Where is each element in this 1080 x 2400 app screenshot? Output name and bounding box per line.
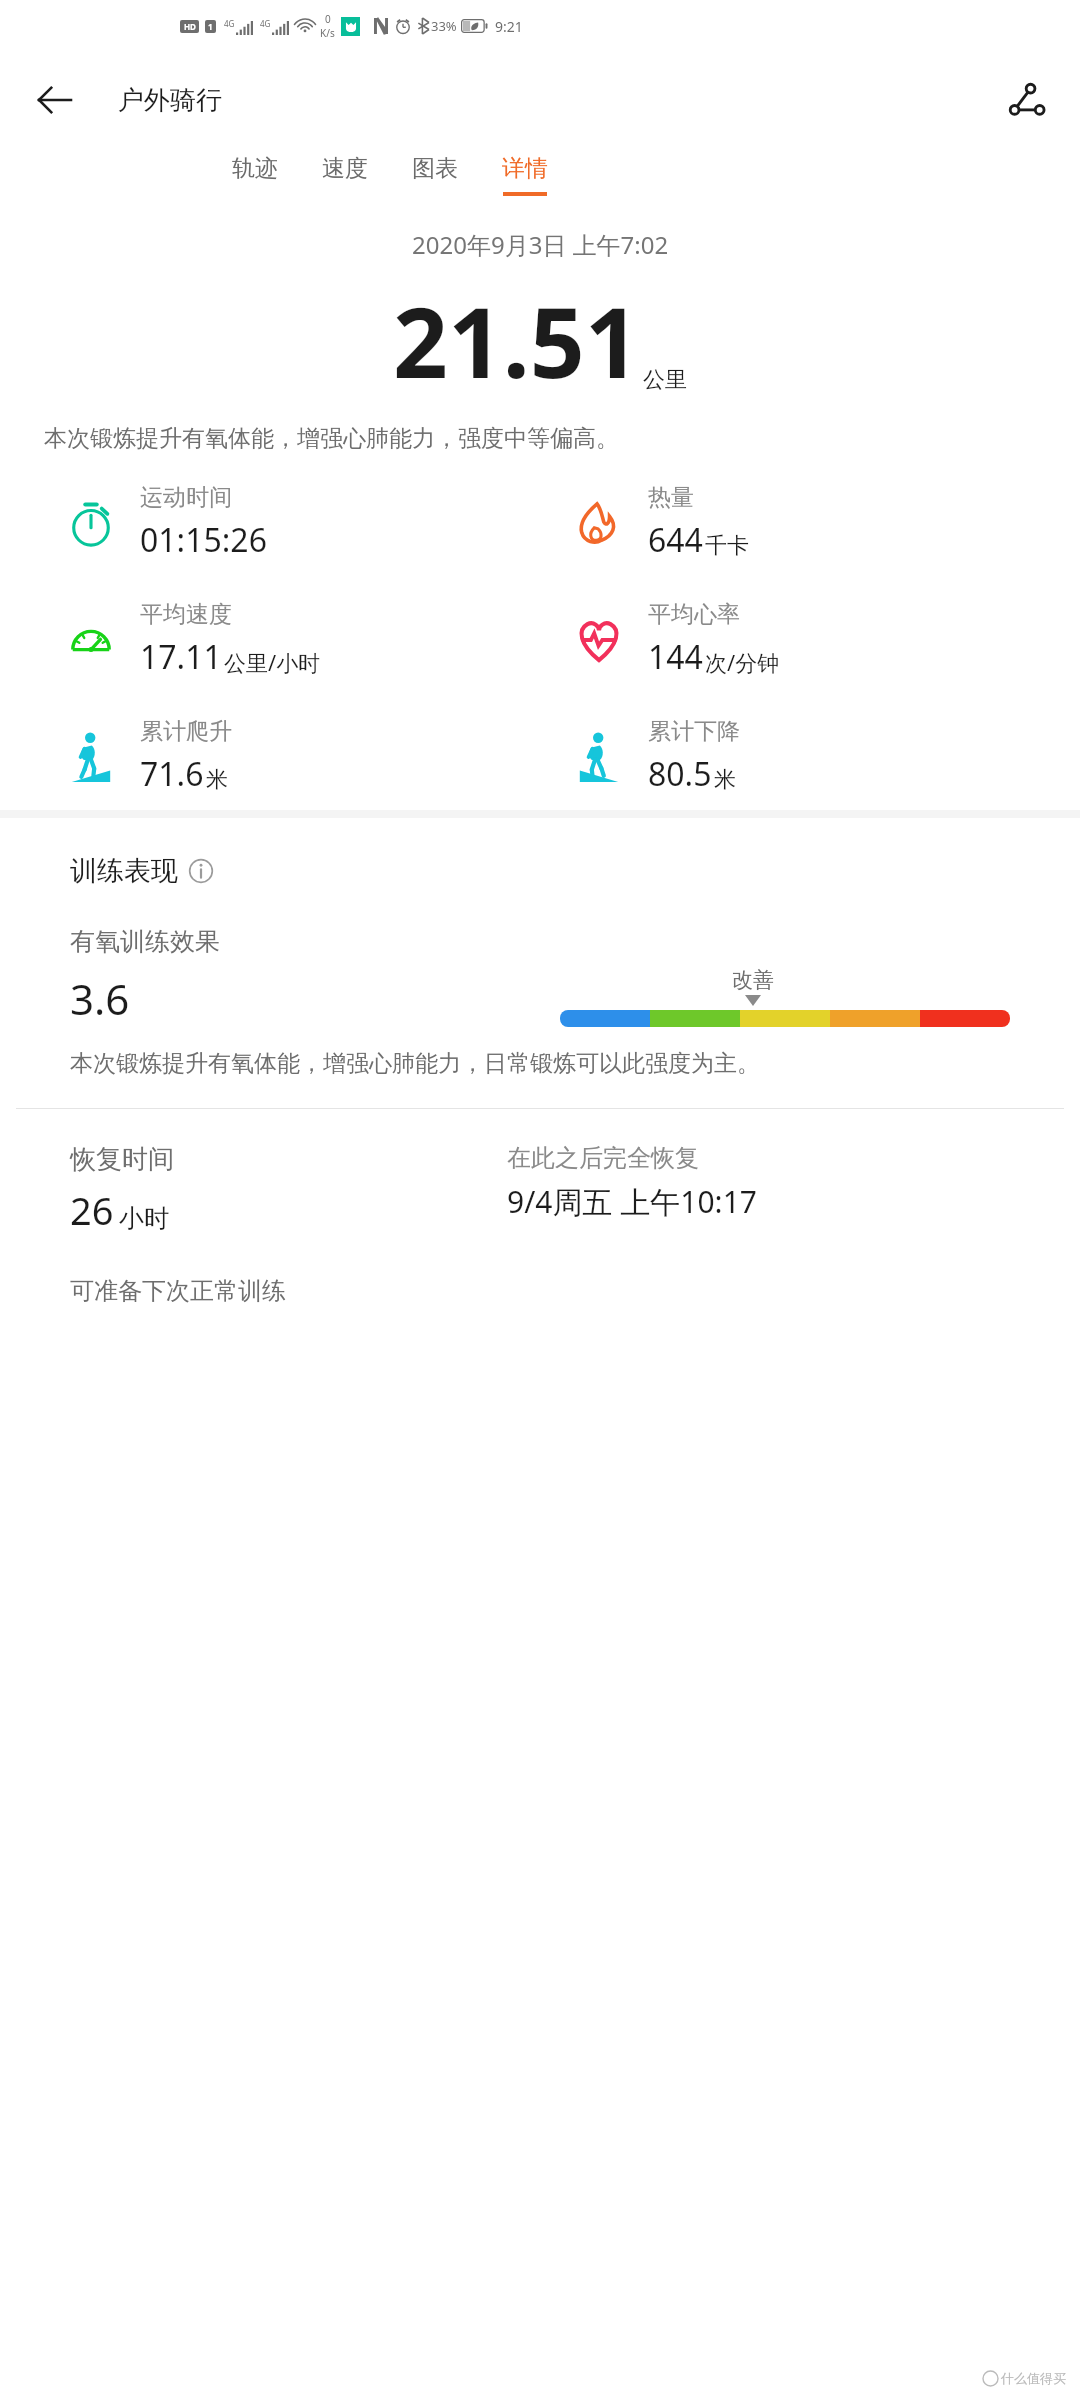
staticText: 644 [648,518,703,562]
staticText: 公里/小时 [224,647,321,677]
staticText: 米 [206,766,228,794]
button[interactable]: 平均心率 [570,600,1080,679]
staticText: 4G [224,18,235,29]
staticText: 可准备下次正常训练 [70,1276,286,1306]
staticText: 本次锻炼提升有氧体能，增强心肺能力，强度中等偏高。 [44,424,1036,453]
staticText: 小时 [119,1203,169,1234]
staticText: 1 [208,21,213,32]
button[interactable]: Back [28,74,80,126]
staticText: 图表 [412,154,458,183]
staticText: HD [184,21,196,32]
staticText: 公里 [643,366,687,394]
staticText: 累计爬升 [140,717,232,746]
staticText: 运动时间 [140,483,232,512]
staticText: 累计下降 [648,717,740,746]
staticText: 21.51 [393,275,640,406]
staticText: 26 [70,1184,114,1236]
staticText: 有氧训练效果 [70,926,220,957]
staticText: 户外骑行 [118,84,222,117]
staticText: 2020年9月3日 上午7:02 [412,228,669,261]
staticText: 平均速度 [140,600,232,629]
staticText: 3.6 [70,970,130,1027]
button[interactable]: 速度 [322,148,368,196]
button[interactable]: 累计下降 [570,717,1080,796]
staticText: 144 [648,635,703,679]
staticText: 什么值得买 [1001,2370,1066,2386]
staticText: 千卡 [705,532,749,560]
staticText: 轨迹 [232,154,278,183]
staticText: 71.6 [140,752,204,796]
staticText: 恢复时间 [70,1143,174,1176]
staticText: 次/分钟 [705,647,780,677]
button[interactable]: 累计爬升 [62,717,540,796]
button[interactable]: Share route [998,72,1054,128]
staticText: 热量 [648,483,694,512]
staticText: 9/4周五 上午10:17 [507,1181,757,1222]
staticText: 4G [260,18,271,29]
staticText: 米 [714,766,736,794]
staticText: 详情 [502,154,548,183]
button[interactable]: 运动时间 [62,483,540,562]
button[interactable]: 详情 [502,148,548,196]
staticText: 在此之后完全恢复 [507,1143,699,1173]
staticText: 80.5 [648,752,712,796]
button[interactable]: 图表 [412,148,458,196]
staticText: 改善 [732,967,774,993]
button[interactable]: 平均速度 [62,600,540,679]
staticText: 0 [325,12,331,26]
staticText: K/s [320,26,335,40]
button[interactable]: 热量 [570,483,1080,562]
staticText: 本次锻炼提升有氧体能，增强心肺能力，日常锻炼可以此强度为主。 [70,1049,760,1078]
staticText: 33% [431,17,457,35]
staticText: 17.11 [140,635,222,679]
button[interactable]: 轨迹 [232,148,278,196]
staticText: 训练表现 [70,854,178,888]
staticText: 01:15:26 [140,518,267,562]
staticText: 速度 [322,154,368,183]
button[interactable]: 训练表现 [70,854,214,888]
staticText: 9:21 [495,17,523,36]
staticText: 平均心率 [648,600,740,629]
